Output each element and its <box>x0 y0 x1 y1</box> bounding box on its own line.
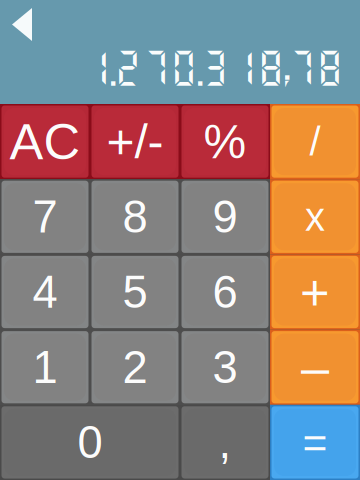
button[interactable]: 4 <box>0 254 90 330</box>
staticText: 4 <box>32 267 57 317</box>
staticText: 9 <box>212 191 237 242</box>
staticText: 1 <box>32 342 57 392</box>
button[interactable]: x <box>270 179 360 254</box>
button[interactable]: +/- <box>90 104 180 179</box>
staticText: 6 <box>212 267 237 317</box>
button[interactable]: 8 <box>90 179 180 254</box>
button[interactable]: 5 <box>90 254 180 330</box>
staticText: 7 <box>32 191 57 242</box>
staticText: + <box>300 264 330 320</box>
staticText: 1.270.318,78 <box>83 45 344 90</box>
button[interactable]: Back <box>0 0 46 50</box>
staticText: +/- <box>106 115 163 168</box>
staticText: 2 <box>122 342 147 392</box>
staticText: 0 <box>77 417 102 468</box>
button[interactable]: 1 <box>0 330 90 405</box>
staticText: AC <box>9 113 80 170</box>
staticText: – <box>301 339 329 395</box>
staticText: / <box>309 119 320 164</box>
staticText: , <box>218 417 231 468</box>
button[interactable]: 2 <box>90 330 180 405</box>
button[interactable]: % <box>180 104 270 179</box>
staticText: % <box>203 115 246 168</box>
button[interactable]: , <box>180 405 270 480</box>
staticText: 3 <box>212 342 237 392</box>
button[interactable]: AC <box>0 104 90 179</box>
button[interactable]: 9 <box>180 179 270 254</box>
button[interactable]: 6 <box>180 254 270 330</box>
button[interactable]: – <box>270 330 360 405</box>
button[interactable]: + <box>270 254 360 330</box>
staticText: 8 <box>122 191 147 242</box>
button[interactable]: 7 <box>0 179 90 254</box>
staticText: x <box>305 194 325 239</box>
staticText: 5 <box>122 267 147 317</box>
button[interactable]: 3 <box>180 330 270 405</box>
button[interactable]: / <box>270 104 360 179</box>
button[interactable]: = <box>270 405 360 480</box>
staticText: = <box>302 419 327 466</box>
button[interactable]: 0 <box>0 405 180 480</box>
